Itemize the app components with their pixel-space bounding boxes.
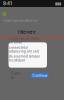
- staticText: consectetur adipiscing elit sed: [9, 46, 39, 53]
- staticText: Lorem ipsum dolor sit: [2, 18, 37, 23]
- staticText: Title Here: [17, 30, 35, 35]
- staticText: do eiusmod tempor incididunt: [9, 54, 40, 62]
- staticText: 9:41: [3, 1, 12, 6]
- button[interactable]: Cancel: [9, 70, 23, 81]
- staticText: Lorem ipsum dolor sit amet: [9, 37, 39, 44]
- staticText: Continue: [32, 73, 47, 77]
- button[interactable]: Continue: [31, 73, 49, 78]
- staticText: Cancel: [11, 71, 21, 80]
- staticText: ▮▮▮: [55, 1, 61, 6]
